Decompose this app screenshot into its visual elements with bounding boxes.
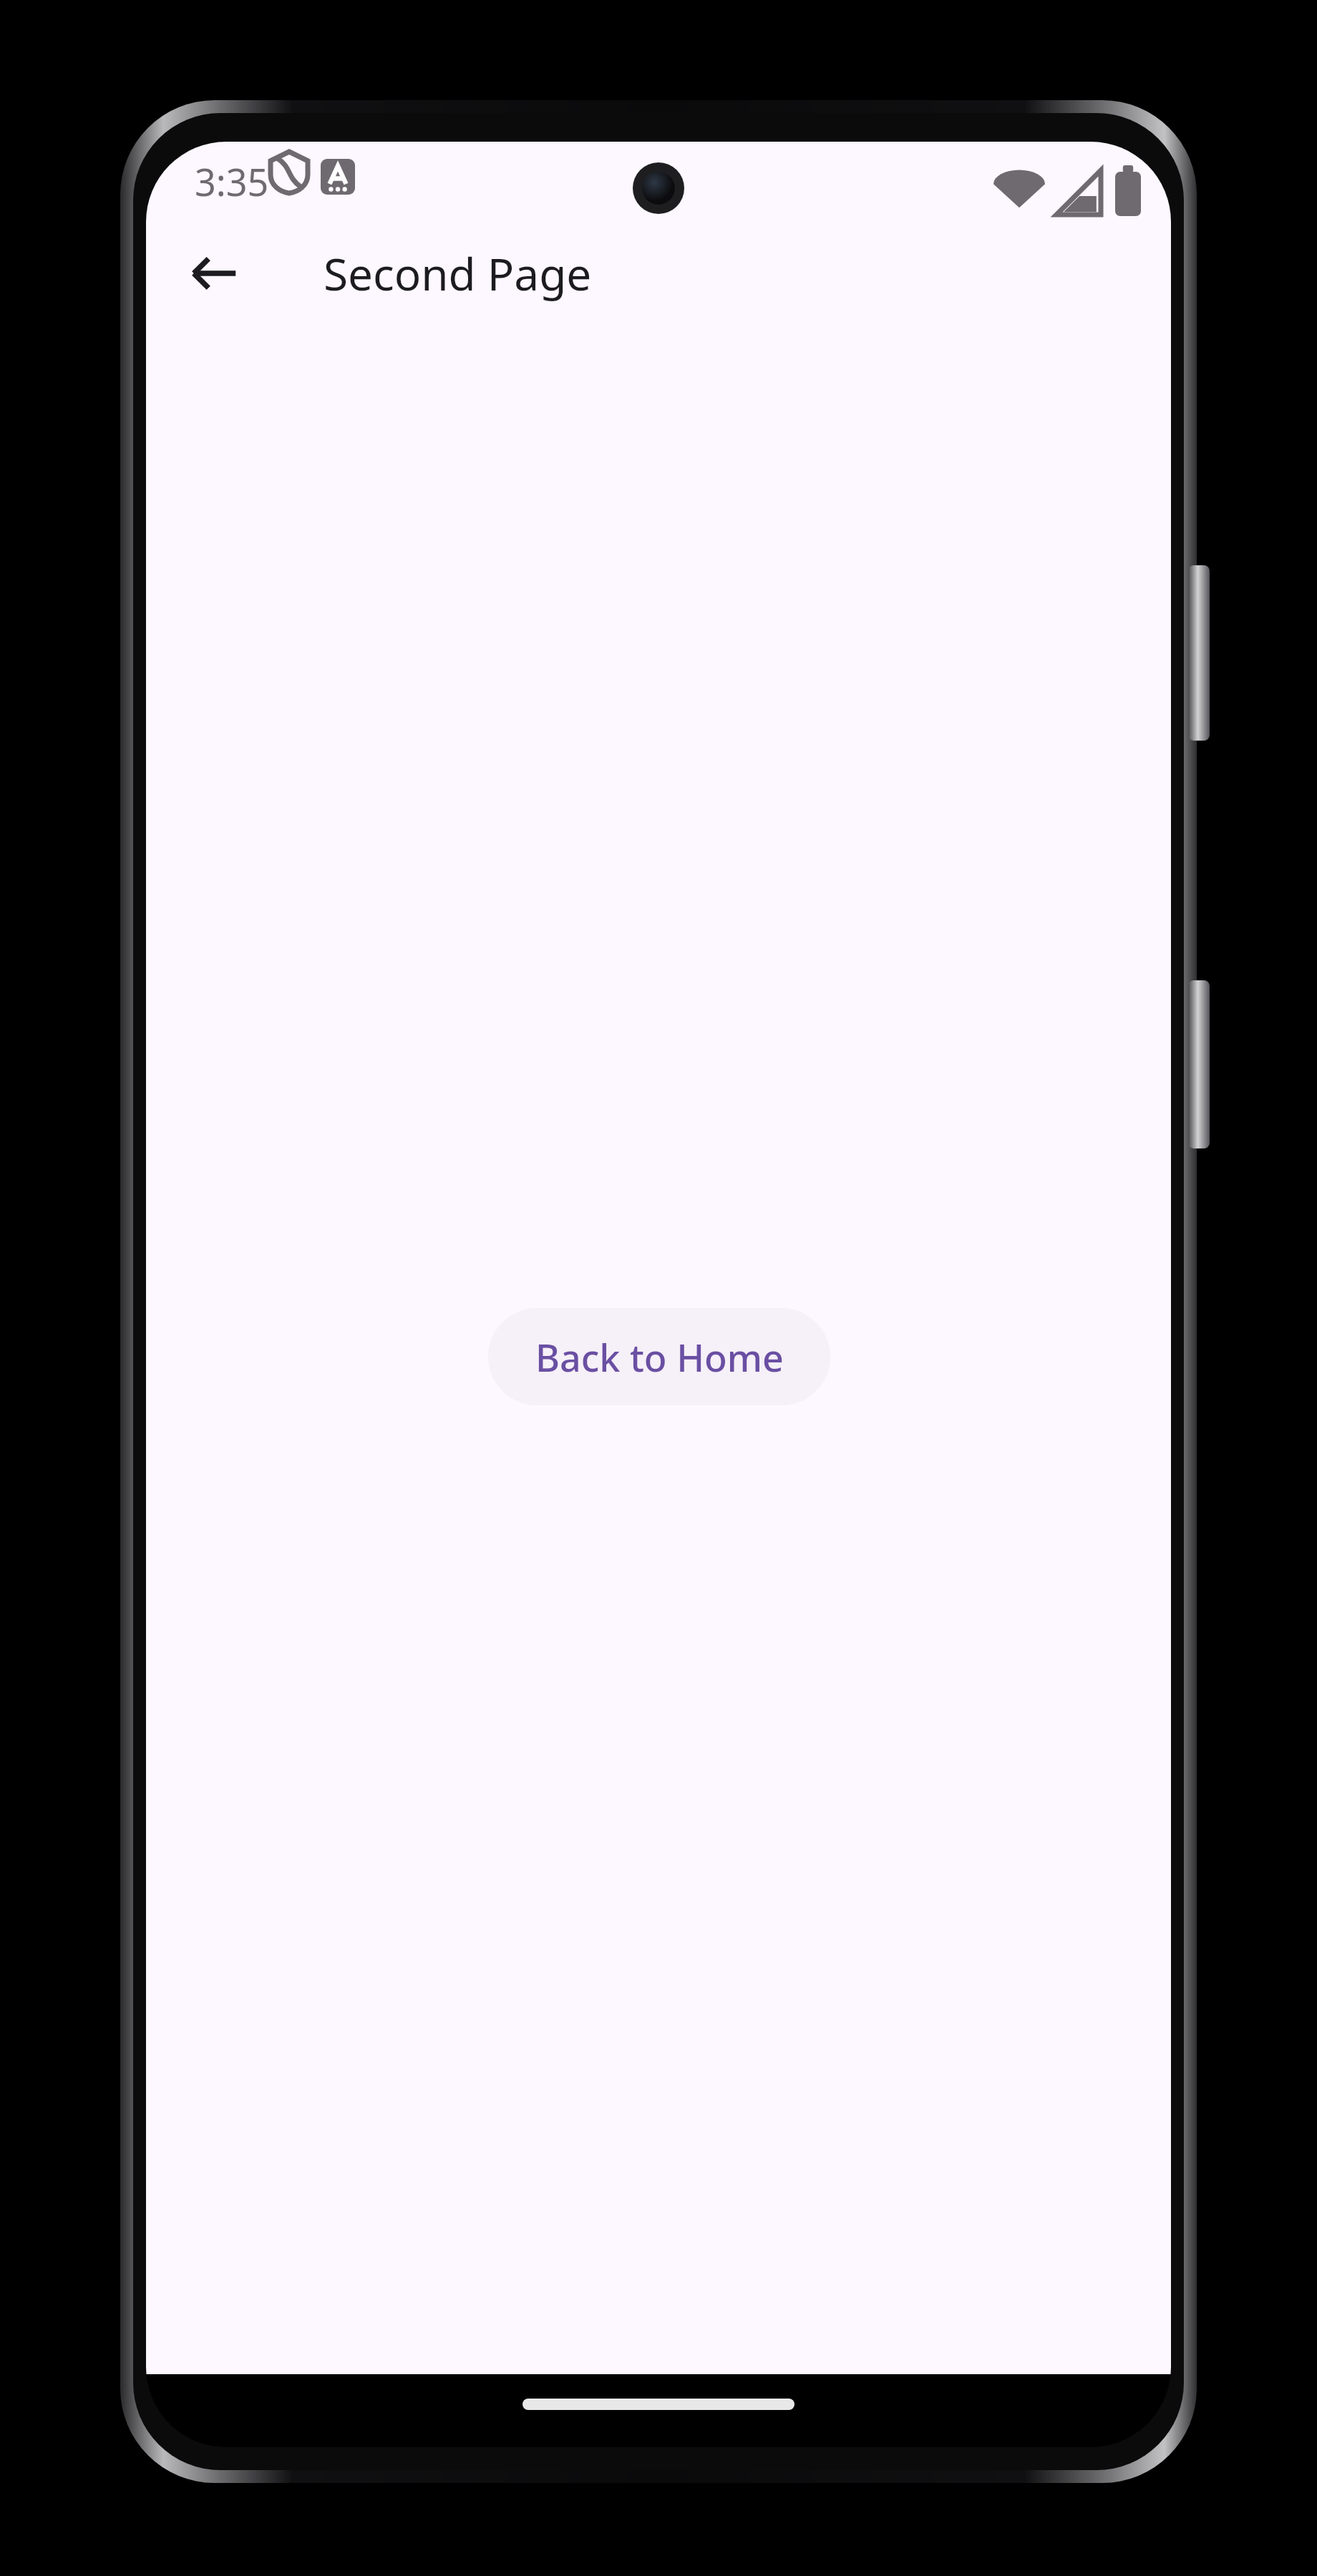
staticText: Back to Home <box>535 1332 784 1382</box>
button[interactable]: Back to Home <box>488 1308 830 1405</box>
staticText: Second Page <box>324 243 592 303</box>
button[interactable]: Back <box>166 225 263 322</box>
staticText: 3:35 <box>195 156 269 207</box>
